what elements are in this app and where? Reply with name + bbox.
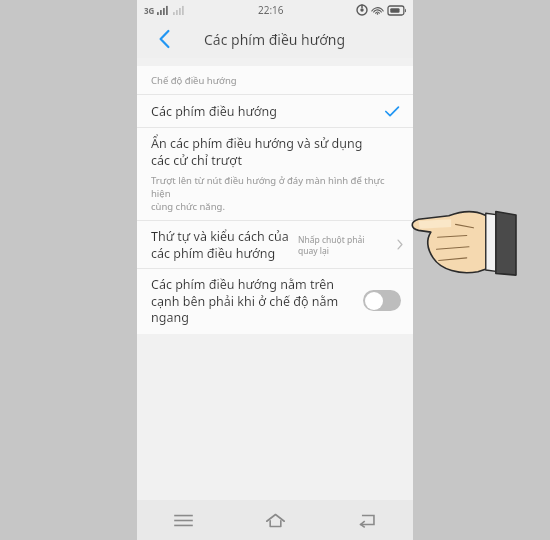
button[interactable]: Back — [321, 500, 413, 540]
staticText: Nhấp chuột phải quay lại — [298, 234, 397, 256]
button[interactable]: Toggle landscape navigation keys — [363, 290, 401, 311]
button[interactable]: Back — [149, 24, 179, 54]
button[interactable]: Các phím điều hướng nằm trên cạnh bên ph… — [137, 269, 413, 334]
staticText: 22:16 — [258, 3, 284, 17]
staticText: Các phím điều hướng — [204, 30, 346, 49]
staticText: Thứ tự và kiểu cách của các phím điều hư… — [151, 228, 289, 261]
button[interactable]: Thứ tự và kiểu cách của các phím điều hư… — [137, 221, 413, 268]
staticText: 3G — [144, 5, 155, 16]
staticText: Trượt lên từ nút điều hướng ở đáy màn hì… — [151, 174, 399, 213]
button[interactable]: Ẩn các phím điều hướng và sử dụng các cử… — [137, 128, 413, 220]
button[interactable]: Menu — [137, 500, 229, 540]
staticText: Chế độ điều hướng — [151, 74, 237, 87]
staticText: Các phím điều hướng nằm trên cạnh bên ph… — [151, 276, 355, 325]
staticText: Ẩn các phím điều hướng và sử dụng các cử… — [151, 135, 363, 168]
button[interactable]: Home — [229, 500, 321, 540]
staticText: Các phím điều hướng — [151, 103, 385, 120]
button[interactable]: Các phím điều hướng — [137, 95, 413, 127]
